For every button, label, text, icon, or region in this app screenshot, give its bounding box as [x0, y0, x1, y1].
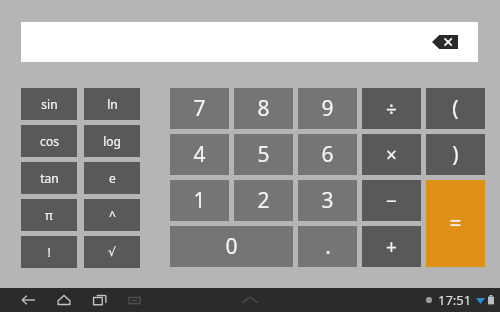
staticText: 1 — [193, 186, 206, 215]
staticText: . — [325, 232, 331, 261]
staticText: 3 — [321, 186, 334, 215]
button[interactable]: ÷ — [362, 88, 421, 129]
staticText: √ — [108, 245, 116, 259]
staticText: sin — [41, 96, 58, 112]
staticText: 5 — [257, 140, 270, 169]
button[interactable]: 7 — [170, 88, 229, 129]
staticText: 2 — [257, 186, 270, 215]
staticText: 7 — [193, 94, 206, 123]
staticText: − — [386, 188, 397, 214]
button[interactable]: log — [84, 125, 140, 157]
staticText: ln — [107, 96, 118, 112]
button[interactable]: 6 — [298, 134, 357, 175]
button[interactable]: 1 — [170, 180, 229, 221]
button[interactable]: Status — [425, 291, 494, 309]
button[interactable]: cos — [21, 125, 77, 157]
button[interactable]: ) — [426, 134, 485, 175]
button[interactable]: × — [362, 134, 421, 175]
button[interactable]: Screenshot — [120, 288, 148, 312]
button[interactable]: ln — [84, 88, 140, 120]
staticText: 9 — [321, 94, 334, 123]
staticText: ^ — [109, 207, 116, 223]
button[interactable]: Backspace — [432, 35, 458, 49]
button[interactable]: Expand — [235, 288, 265, 312]
button[interactable]: e — [84, 162, 140, 194]
staticText: 8 — [257, 94, 270, 123]
button[interactable]: Recent apps — [86, 288, 114, 312]
staticText: cos — [40, 133, 59, 149]
button[interactable]: 8 — [234, 88, 293, 129]
staticText: ) — [452, 140, 459, 169]
staticText: ÷ — [386, 96, 397, 122]
staticText: ( — [452, 94, 459, 123]
button[interactable]: 3 — [298, 180, 357, 221]
button[interactable]: tan — [21, 162, 77, 194]
button[interactable]: sin — [21, 88, 77, 120]
staticText: 0 — [225, 232, 238, 261]
button[interactable]: 4 — [170, 134, 229, 175]
button[interactable]: ! — [21, 236, 77, 268]
staticText: ! — [47, 244, 51, 260]
button[interactable]: ( — [426, 88, 485, 129]
button[interactable]: = — [426, 180, 485, 267]
staticText: × — [386, 142, 397, 168]
button[interactable]: Home — [50, 288, 78, 312]
button[interactable]: + — [362, 226, 421, 267]
staticText: = — [449, 209, 462, 238]
staticText: log — [103, 133, 121, 149]
button[interactable]: 0 — [170, 226, 293, 267]
button[interactable]: 9 — [298, 88, 357, 129]
staticText: 17:51 — [438, 291, 472, 309]
button[interactable]: ^ — [84, 199, 140, 231]
button[interactable]: π — [21, 199, 77, 231]
button[interactable]: Backspace — [21, 22, 478, 62]
button[interactable]: 2 — [234, 180, 293, 221]
button[interactable]: Back — [14, 288, 42, 312]
button[interactable]: − — [362, 180, 421, 221]
button[interactable]: . — [298, 226, 357, 267]
staticText: π — [45, 207, 53, 223]
staticText: e — [109, 170, 116, 186]
staticText: + — [386, 234, 397, 260]
staticText: 6 — [321, 140, 334, 169]
staticText: 4 — [193, 140, 206, 169]
staticText: tan — [40, 170, 59, 186]
button[interactable]: √ — [84, 236, 140, 268]
button[interactable]: 5 — [234, 134, 293, 175]
